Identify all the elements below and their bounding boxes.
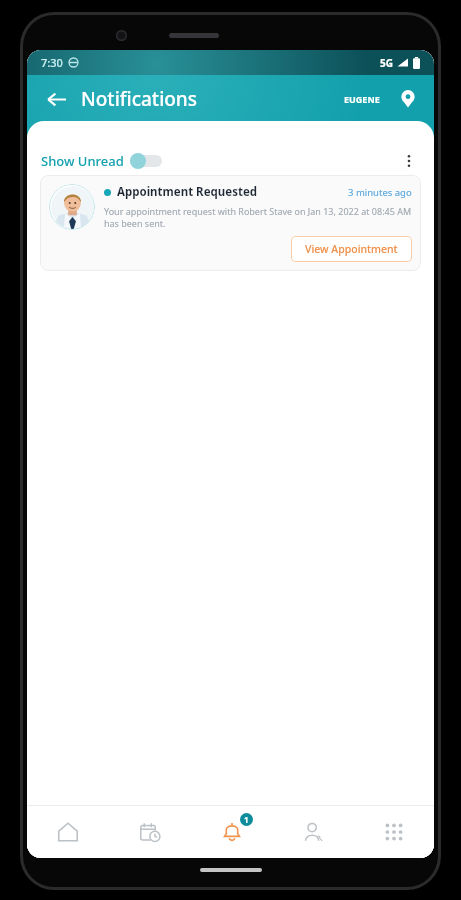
staticText: Notifications xyxy=(81,86,198,112)
staticText: View Appointment xyxy=(305,242,398,256)
button[interactable]: More options xyxy=(396,148,422,174)
staticText: Show Unread xyxy=(41,152,124,170)
staticText: 7:30 xyxy=(41,55,63,70)
button[interactable]: View Appointment xyxy=(291,236,412,262)
button[interactable]: Show Unread xyxy=(41,150,162,172)
button[interactable]: Appointment Requested xyxy=(40,175,421,271)
button[interactable]: Profile xyxy=(272,806,353,858)
staticText: 5G xyxy=(380,56,393,70)
staticText: 1 xyxy=(244,814,249,825)
button[interactable]: More xyxy=(353,806,434,858)
button[interactable]: Appointments xyxy=(109,806,191,858)
button[interactable]: Home xyxy=(27,806,109,858)
button[interactable]: Notifications xyxy=(191,806,272,858)
staticText: Your appointment request with Robert Sta… xyxy=(104,205,412,230)
button[interactable]: Back xyxy=(39,82,73,116)
staticText: EUGENE xyxy=(344,93,380,105)
button[interactable]: Location xyxy=(394,85,422,113)
button[interactable]: EUGENE xyxy=(340,87,384,111)
staticText: 3 minutes ago xyxy=(348,186,412,199)
staticText: Appointment Requested xyxy=(117,184,258,200)
